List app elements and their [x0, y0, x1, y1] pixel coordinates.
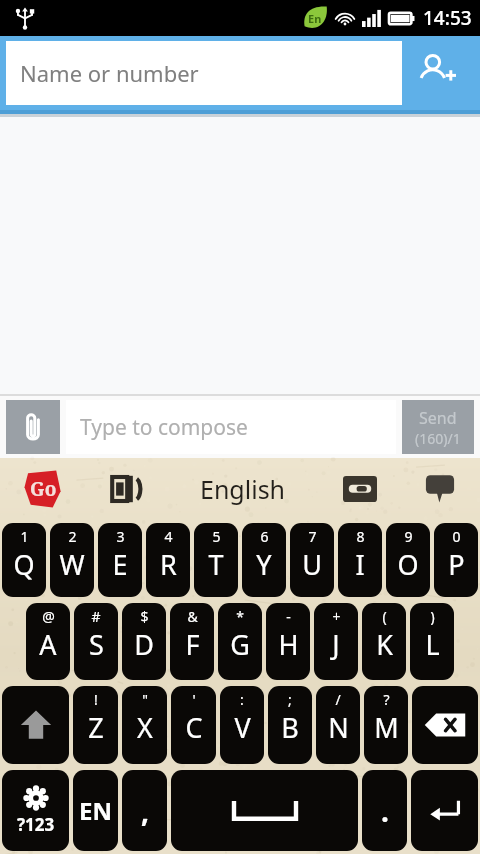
staticText: (	[382, 607, 387, 626]
button[interactable]: ,	[122, 770, 167, 851]
button[interactable]: 2	[50, 523, 94, 597]
staticText: ?	[383, 690, 390, 709]
staticText: ?123	[17, 813, 55, 836]
staticText: R	[160, 546, 177, 583]
button[interactable]: Enter	[411, 770, 478, 851]
staticText: V	[234, 709, 251, 746]
staticText: M	[374, 709, 399, 746]
button[interactable]: 6	[242, 523, 286, 597]
staticText: English	[200, 472, 286, 506]
staticText: /	[335, 690, 341, 709]
staticText: Type to compose	[80, 413, 248, 442]
staticText: &	[187, 607, 198, 626]
button[interactable]: 4	[146, 523, 190, 597]
staticText: #	[91, 607, 101, 626]
button[interactable]: !	[73, 686, 118, 764]
staticText: S	[89, 626, 104, 663]
button[interactable]: ;	[268, 686, 312, 764]
button[interactable]: &	[170, 603, 214, 680]
staticText: 7	[308, 527, 317, 546]
staticText: "	[142, 690, 148, 709]
staticText: ;	[288, 690, 292, 709]
staticText: 8	[356, 527, 365, 546]
button[interactable]: 3	[98, 523, 142, 597]
button[interactable]: 8	[338, 523, 382, 597]
staticText: G	[230, 626, 250, 663]
button[interactable]: Type to compose	[66, 400, 396, 454]
staticText: Y	[256, 546, 272, 583]
button[interactable]: +	[314, 603, 358, 680]
staticText: H	[278, 626, 299, 663]
button[interactable]: 1	[2, 523, 46, 597]
button[interactable]: Space	[171, 770, 358, 851]
button[interactable]: Shift	[2, 686, 69, 764]
staticText: U	[302, 546, 322, 583]
button[interactable]: )	[410, 603, 454, 680]
staticText: B	[281, 709, 299, 746]
staticText: @	[42, 607, 55, 626]
button[interactable]: (	[362, 603, 406, 680]
button[interactable]: Hide keyboard	[320, 458, 400, 520]
staticText: A	[39, 626, 57, 663]
button[interactable]: /	[316, 686, 360, 764]
staticText: I	[355, 546, 365, 583]
staticText: P	[448, 546, 465, 583]
button[interactable]: 9	[386, 523, 430, 597]
button[interactable]: English	[166, 458, 320, 520]
staticText: +	[332, 607, 341, 626]
staticText: 5	[212, 527, 221, 546]
staticText: En	[308, 11, 322, 26]
staticText: Q	[13, 546, 35, 583]
staticText: E	[112, 546, 128, 583]
staticText: W	[59, 546, 85, 583]
staticText: 14:53	[423, 5, 472, 31]
staticText: -	[286, 607, 291, 626]
button[interactable]: GO Keyboard	[0, 458, 86, 520]
button[interactable]: 5	[194, 523, 238, 597]
button[interactable]: #	[74, 603, 118, 680]
button[interactable]: Symbols	[2, 770, 69, 851]
button[interactable]: '	[171, 686, 216, 764]
staticText: '	[192, 690, 196, 709]
button[interactable]: -	[266, 603, 310, 680]
staticText: :	[240, 690, 244, 709]
staticText: ,	[141, 792, 149, 830]
button[interactable]: Name or number	[6, 41, 402, 105]
button[interactable]: Emoji	[400, 458, 480, 520]
button[interactable]: Add contact	[402, 41, 474, 105]
button[interactable]: Backspace	[412, 686, 478, 764]
staticText: T	[208, 546, 224, 583]
button[interactable]: :	[220, 686, 264, 764]
staticText: 2	[68, 527, 77, 546]
button[interactable]: 0	[434, 523, 478, 597]
staticText: Send	[419, 407, 457, 429]
button[interactable]: Switch layout	[86, 458, 166, 520]
staticText: X	[137, 709, 153, 746]
staticText: $	[140, 607, 149, 626]
staticText: Go	[30, 476, 57, 502]
button[interactable]: @	[26, 603, 70, 680]
button[interactable]: .	[362, 770, 407, 851]
button[interactable]: ?	[364, 686, 408, 764]
staticText: J	[332, 626, 340, 663]
button[interactable]: EN	[73, 770, 118, 851]
button[interactable]: $	[122, 603, 166, 680]
button[interactable]: Send	[402, 400, 474, 454]
staticText: !	[94, 690, 98, 709]
staticText: O	[397, 546, 419, 583]
staticText: Name or number	[20, 58, 199, 88]
button[interactable]: 7	[290, 523, 334, 597]
staticText: 6	[260, 527, 269, 546]
staticText: K	[376, 626, 393, 663]
button[interactable]: "	[122, 686, 167, 764]
button[interactable]: *	[218, 603, 262, 680]
staticText: )	[430, 607, 435, 626]
staticText: Z	[88, 709, 104, 746]
staticText: 3	[116, 527, 125, 546]
staticText: N	[328, 709, 349, 746]
staticText: 1	[20, 527, 29, 546]
staticText: C	[185, 709, 203, 746]
button[interactable]: Attach	[6, 400, 60, 454]
staticText: *	[236, 607, 244, 626]
staticText: F	[185, 626, 200, 663]
